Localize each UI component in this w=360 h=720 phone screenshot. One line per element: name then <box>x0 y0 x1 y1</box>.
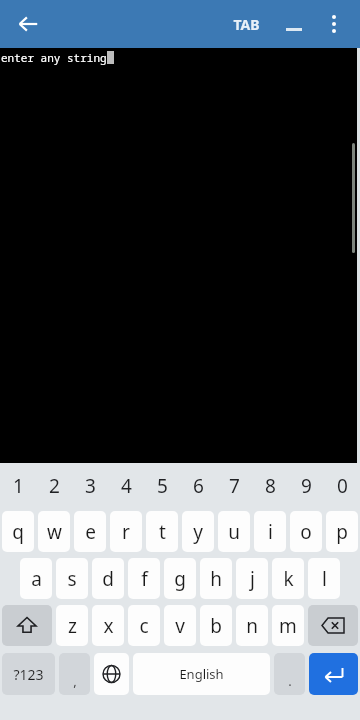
button[interactable]: r <box>110 511 142 552</box>
button[interactable]: Shift <box>2 605 52 646</box>
staticText: y <box>193 519 203 545</box>
button[interactable]: j <box>236 558 268 599</box>
button[interactable]: l <box>308 558 340 599</box>
button[interactable]: d <box>92 558 124 599</box>
staticText: 5 <box>157 473 168 499</box>
button[interactable]: 0 <box>324 463 360 508</box>
button[interactable]: s <box>56 558 88 599</box>
button[interactable]: Minimize <box>276 6 312 42</box>
button[interactable]: Enter <box>309 653 358 695</box>
button[interactable]: v <box>164 605 196 646</box>
button[interactable]: 4 <box>108 463 144 508</box>
staticText: u <box>228 519 240 545</box>
staticText: v <box>175 613 185 639</box>
button[interactable]: p <box>326 511 358 552</box>
staticText: s <box>67 566 77 592</box>
staticText: . <box>288 672 292 690</box>
button[interactable]: f <box>128 558 160 599</box>
button[interactable]: 3 <box>72 463 108 508</box>
staticText: 9 <box>301 473 312 499</box>
button[interactable]: Change language <box>94 653 129 695</box>
button[interactable]: 7 <box>216 463 252 508</box>
button[interactable]: w <box>38 511 70 552</box>
staticText: q <box>12 519 24 545</box>
staticText: 0 <box>337 473 348 499</box>
staticText: f <box>141 566 148 592</box>
button[interactable]: u <box>218 511 250 552</box>
button[interactable]: k <box>272 558 304 599</box>
button[interactable]: More options <box>314 4 354 44</box>
staticText: 1 <box>13 473 24 499</box>
staticText: i <box>268 519 273 545</box>
button[interactable]: , <box>59 653 90 695</box>
button[interactable]: t <box>146 511 178 552</box>
staticText: t <box>159 519 166 545</box>
staticText: 2 <box>49 473 60 499</box>
button[interactable]: English <box>133 653 270 695</box>
button[interactable]: 8 <box>252 463 288 508</box>
staticText: c <box>139 613 149 639</box>
button[interactable]: q <box>2 511 34 552</box>
staticText: a <box>31 566 42 592</box>
staticText: j <box>250 566 255 592</box>
staticText: , <box>73 672 77 690</box>
staticText: m <box>279 613 297 639</box>
staticText: k <box>283 566 294 592</box>
button[interactable]: 2 <box>36 463 72 508</box>
staticText: 6 <box>193 473 204 499</box>
button[interactable]: g <box>164 558 196 599</box>
staticText: b <box>210 613 222 639</box>
staticText: o <box>300 519 312 545</box>
button[interactable]: 1 <box>0 463 36 508</box>
staticText: 4 <box>121 473 132 499</box>
staticText: l <box>322 566 327 592</box>
button[interactable]: b <box>200 605 232 646</box>
staticText: 3 <box>85 473 96 499</box>
button[interactable]: Back <box>8 4 48 44</box>
button[interactable]: e <box>74 511 106 552</box>
button[interactable]: m <box>272 605 304 646</box>
staticText: z <box>68 613 77 639</box>
button[interactable]: 9 <box>288 463 324 508</box>
staticText: d <box>102 566 114 592</box>
button[interactable]: c <box>128 605 160 646</box>
button[interactable]: x <box>92 605 124 646</box>
button[interactable]: y <box>182 511 214 552</box>
button[interactable]: o <box>290 511 322 552</box>
staticText: enter any string <box>1 50 107 65</box>
button[interactable]: TAB <box>233 15 260 34</box>
button[interactable]: z <box>56 605 88 646</box>
button[interactable]: a <box>20 558 52 599</box>
staticText: x <box>103 613 114 639</box>
staticText: 8 <box>265 473 276 499</box>
staticText: English <box>179 665 224 683</box>
button[interactable]: Backspace <box>308 605 358 646</box>
button[interactable]: 6 <box>180 463 216 508</box>
staticText: n <box>246 613 258 639</box>
staticText: w <box>47 519 62 545</box>
staticText: 7 <box>229 473 240 499</box>
button[interactable]: . <box>274 653 305 695</box>
staticText: e <box>85 519 96 545</box>
button[interactable]: n <box>236 605 268 646</box>
staticText: h <box>210 566 222 592</box>
button[interactable]: i <box>254 511 286 552</box>
staticText: r <box>122 519 130 545</box>
staticText: ?123 <box>13 665 44 684</box>
button[interactable]: 5 <box>144 463 180 508</box>
button[interactable]: ?123 <box>2 653 55 695</box>
staticText: p <box>336 519 348 545</box>
staticText: TAB <box>233 15 260 34</box>
staticText: g <box>174 566 186 592</box>
button[interactable]: h <box>200 558 232 599</box>
